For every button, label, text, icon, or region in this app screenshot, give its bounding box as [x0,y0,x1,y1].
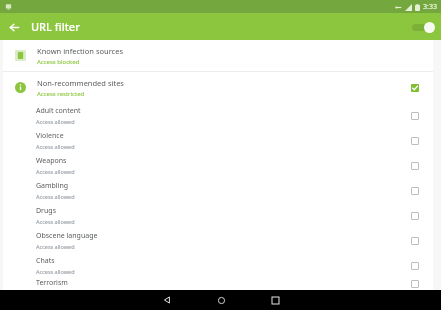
staticText: Non-recommended sites [37,78,124,88]
staticText: Drugs [36,206,56,216]
button[interactable]: Back [152,290,182,310]
button[interactable]: Known infection sources [3,40,433,71]
button[interactable]: Non-recommended sites [3,72,433,103]
staticText: Violence [36,131,64,141]
staticText: Access allowed [36,118,75,125]
button[interactable]: Enable URL filter [409,17,435,37]
staticText: Access allowed [36,143,75,150]
button[interactable]: Violence [3,128,433,153]
staticText: Chats [36,256,55,266]
staticText: 3:33 [423,2,437,12]
staticText: Access allowed [36,168,75,175]
button[interactable]: Terrorism [408,278,422,290]
staticText: Access allowed [36,218,75,225]
staticText: Terrorism [36,278,68,288]
button[interactable]: Chats [408,259,422,273]
staticText: Access blocked [37,58,80,66]
staticText: URL filter [31,19,80,34]
button[interactable]: Chats [3,253,433,278]
button[interactable]: Adult content [408,109,422,123]
staticText: Weapons [36,156,67,166]
button[interactable]: Gambling [408,184,422,198]
button[interactable]: Drugs [3,203,433,228]
staticText: Gambling [36,181,69,191]
button[interactable]: Weapons [408,159,422,173]
button[interactable]: Adult content [3,103,433,128]
button[interactable]: Violence [408,134,422,148]
button[interactable]: Weapons [3,153,433,178]
staticText: Access allowed [36,268,75,275]
staticText: Obscene language [36,231,98,241]
button[interactable]: Home [206,290,236,310]
staticText: Adult content [36,106,81,116]
button[interactable]: Drugs [408,209,422,223]
staticText: Access restricted [37,90,85,98]
button[interactable]: Non-recommended sites [408,81,422,95]
button[interactable]: Back [4,17,24,37]
button[interactable]: Recent apps [260,290,290,310]
staticText: Known infection sources [37,46,124,56]
staticText: Access allowed [36,193,75,200]
button[interactable]: Gambling [3,178,433,203]
button[interactable]: Terrorism [3,278,433,290]
button[interactable]: Obscene language [3,228,433,253]
button[interactable]: Obscene language [408,234,422,248]
staticText: Access allowed [36,243,75,250]
